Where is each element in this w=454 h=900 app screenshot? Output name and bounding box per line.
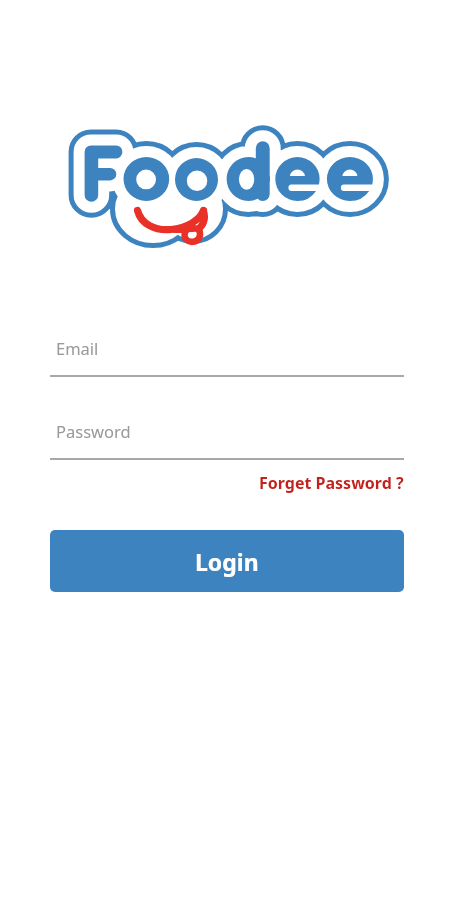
button[interactable]: Forget Password ?	[259, 460, 404, 500]
staticText: Password	[56, 420, 131, 442]
staticText: Email	[56, 337, 99, 359]
button[interactable]: Login	[50, 530, 404, 592]
staticText: Login	[195, 546, 259, 577]
